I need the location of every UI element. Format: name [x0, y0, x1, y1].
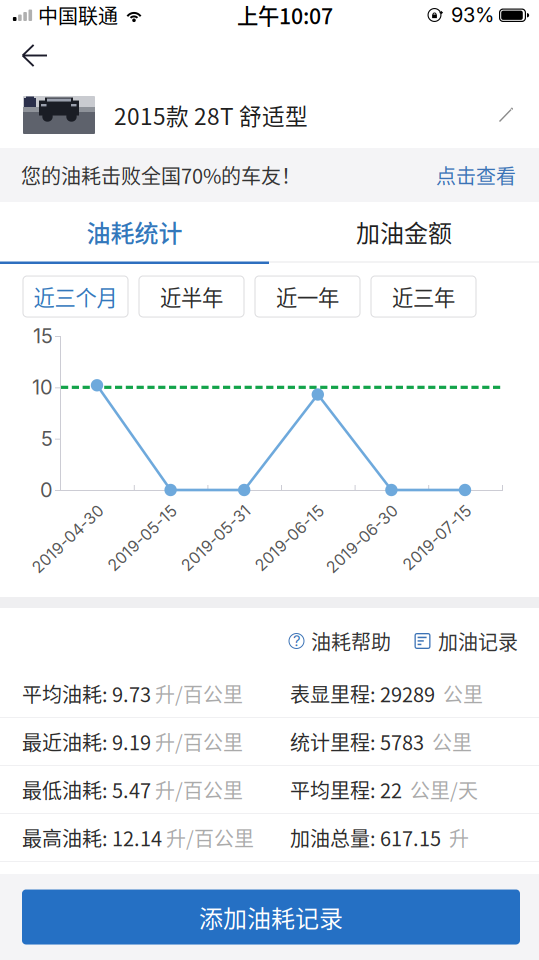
staticText: 表显里程: 29289: [290, 679, 443, 708]
staticText: 2019-06-15: [234, 498, 322, 518]
staticText: 最近油耗: 9.19: [22, 727, 155, 756]
staticText: 最高油耗: 12.14: [22, 823, 166, 852]
staticText: 升: [449, 823, 469, 852]
staticText: ?: [293, 632, 300, 650]
staticText: 2019-04-30: [10, 498, 101, 518]
button[interactable]: 近三年: [371, 276, 476, 317]
staticText: 统计里程: 5783: [290, 727, 432, 756]
button[interactable]: Edit: [497, 95, 539, 135]
button[interactable]: 近三个月: [23, 276, 128, 317]
staticText: 点击查看: [436, 160, 516, 189]
staticText: 公里/天: [410, 775, 478, 804]
staticText: 您的油耗击败全国70%的车友！: [21, 160, 301, 189]
staticText: 油耗统计: [86, 214, 182, 249]
staticText: 2019-05-15: [87, 498, 175, 518]
button[interactable]: Back: [0, 30, 62, 82]
staticText: 加油记录: [438, 626, 518, 655]
staticText: 2019-05-31: [160, 498, 248, 518]
staticText: 5: [41, 427, 53, 451]
staticText: 加油总量: 617.15: [290, 823, 449, 852]
staticText: 0: [40, 478, 53, 502]
staticText: 平均油耗: 9.73: [22, 679, 155, 708]
staticText: 中国联通: [38, 0, 118, 29]
staticText: 平均里程: 22: [290, 775, 410, 804]
staticText: 加油金额: [356, 214, 452, 249]
button[interactable]: 近半年: [139, 276, 244, 317]
button[interactable]: 加油记录: [414, 626, 518, 655]
button[interactable]: 油耗统计: [0, 202, 269, 261]
staticText: 添加油耗记录: [199, 900, 343, 934]
staticText: 最低油耗: 5.47: [22, 775, 155, 804]
staticText: 2015款 28T 舒适型: [114, 99, 308, 131]
staticText: 93%: [451, 3, 494, 27]
button[interactable]: ?: [288, 626, 391, 655]
button[interactable]: 近一年: [255, 276, 360, 317]
staticText: 升/百公里: [155, 775, 243, 804]
staticText: 15: [33, 324, 53, 348]
staticText: 油耗帮助: [311, 626, 391, 655]
staticText: 升/百公里: [155, 679, 243, 708]
staticText: 2019-07-15: [382, 498, 469, 518]
staticText: 升/百公里: [155, 727, 243, 756]
staticText: 近三年: [392, 281, 455, 312]
button[interactable]: 点击查看: [436, 160, 516, 189]
staticText: 公里: [432, 727, 472, 756]
staticText: 近三个月: [33, 281, 117, 312]
staticText: 近一年: [276, 281, 339, 312]
button[interactable]: 加油金额: [269, 202, 539, 261]
staticText: 近半年: [160, 281, 223, 312]
staticText: 公里: [443, 679, 483, 708]
staticText: 10: [32, 375, 53, 399]
staticText: 升/百公里: [166, 823, 254, 852]
button[interactable]: 添加油耗记录: [22, 889, 520, 944]
staticText: 上午10:07: [237, 0, 333, 30]
staticText: 2019-06-30: [304, 498, 395, 518]
